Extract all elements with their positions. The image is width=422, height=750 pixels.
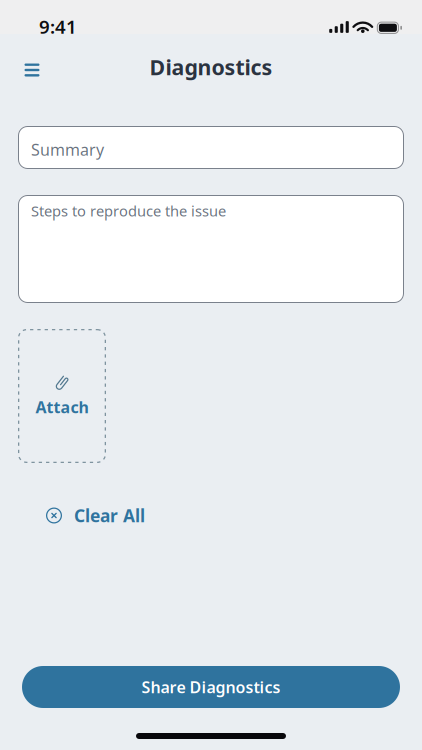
- staticText: Clear All: [74, 504, 145, 527]
- staticText: Summary: [31, 139, 104, 160]
- button[interactable]: Menu: [10, 48, 54, 92]
- button[interactable]: Share Diagnostics: [22, 666, 400, 708]
- staticText: 9:41: [39, 14, 77, 39]
- button[interactable]: Attach: [18, 329, 106, 463]
- button[interactable]: Clear All: [34, 495, 157, 536]
- staticText: Attach: [35, 396, 88, 418]
- staticText: Diagnostics: [149, 53, 272, 81]
- staticText: Steps to reproduce the issue: [31, 201, 226, 220]
- staticText: Share Diagnostics: [141, 676, 280, 698]
